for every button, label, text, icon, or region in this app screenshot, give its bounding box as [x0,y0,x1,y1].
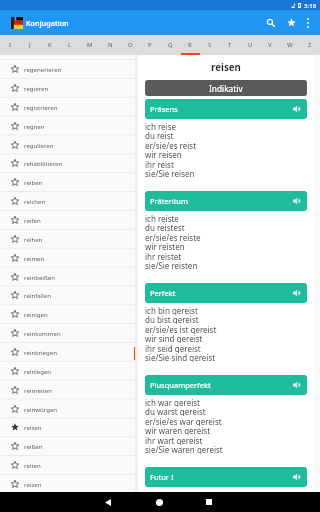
staticText: du reistest [145,222,185,232]
staticText: registrieren [24,103,58,111]
button[interactable]: Präsens [145,99,307,119]
staticText: reinbeißen [24,273,55,281]
staticText: reichen [24,197,46,205]
button[interactable]: reimen [0,248,135,267]
button[interactable]: R [180,35,200,55]
staticText: sie/Sie waren gereist [145,444,223,454]
button[interactable]: reinkommen [0,323,135,342]
staticText: Q [168,41,173,49]
staticText: sie/Sie reisten [145,260,198,270]
staticText: S [208,41,212,49]
button[interactable]: I [0,35,20,55]
button[interactable]: reichen [0,191,135,210]
button[interactable]: reinreiten [0,380,135,399]
staticText: L [68,41,72,49]
staticText: 3:16 [304,1,317,9]
staticText: R [188,41,192,49]
staticText: reisen [145,61,307,74]
staticText: O [128,41,133,49]
staticText: reinkommen [24,329,61,337]
staticText: Präsens [150,104,178,114]
staticText: er/sie/es war gereist [145,416,222,426]
staticText: wir waren gereist [145,425,211,435]
staticText: J [29,41,31,49]
staticText: V [268,41,272,49]
button[interactable]: reißen [0,436,135,455]
button[interactable]: reiben [0,172,135,191]
button[interactable]: Home [139,492,179,512]
staticText: reiben [24,178,43,186]
button[interactable]: rehabilitieren [0,153,135,172]
staticText: W [287,41,293,49]
staticText: du warst gereist [145,406,206,416]
button[interactable]: More options [299,10,317,35]
staticText: ihr reist [145,159,174,169]
button[interactable]: N [100,35,120,55]
staticText: reinlegen [24,367,52,375]
staticText: reinwürgen [24,405,58,413]
button[interactable]: Indikativ [145,80,307,96]
button[interactable]: W [280,35,300,55]
button[interactable]: Plusquamperfekt [145,375,307,395]
button[interactable]: U [240,35,260,55]
button[interactable]: reizen [0,474,135,493]
staticText: er/sie/es reist [145,140,197,150]
button[interactable]: S [200,35,220,55]
button[interactable]: reiten [0,455,135,474]
staticText: er/sie/es ist gereist [145,324,217,334]
staticText: regnen [24,122,45,130]
button[interactable]: Z [300,35,320,55]
button[interactable]: reifen [0,210,135,229]
button[interactable]: V [260,35,280,55]
staticText: M [87,41,93,49]
staticText: wir sind gereist [145,333,203,343]
button[interactable]: reinkriegen [0,342,135,361]
staticText: regulieren [24,141,54,149]
button[interactable]: reisen [0,417,135,436]
button[interactable]: reinbeißen [0,267,135,286]
button[interactable]: P [140,35,160,55]
staticText: Konjugation [26,18,69,28]
staticText: reizen [24,480,42,488]
button[interactable]: K [40,35,60,55]
button[interactable]: Search [262,10,280,35]
button[interactable]: registrieren [0,97,135,116]
button[interactable]: O [120,35,140,55]
button[interactable]: M [80,35,100,55]
button[interactable]: T [220,35,240,55]
staticText: K [48,41,52,49]
button[interactable]: reinlegen [0,361,135,380]
staticText: ich reiste [145,213,179,223]
staticText: du reist [145,130,174,140]
button[interactable]: J [20,35,40,55]
button[interactable]: reihen [0,229,135,248]
staticText: wir reisen [145,149,182,159]
staticText: du bist gereist [145,314,199,324]
button[interactable]: Perfekt [145,283,307,303]
button[interactable]: regnen [0,116,135,135]
staticText: I [9,41,12,49]
button[interactable]: reinigen [0,304,135,323]
staticText: ihr reistet [145,251,182,261]
button[interactable]: regulieren [0,135,135,154]
staticText: reimen [24,254,45,262]
staticText: reinigen [24,310,48,318]
button[interactable]: Präteritum [145,191,307,211]
button[interactable]: Favorites [282,10,300,35]
button[interactable]: Back [88,492,128,512]
staticText: Plusquamperfekt [150,380,211,390]
button[interactable]: Futur I [145,467,307,487]
staticText: reinreiten [24,386,52,394]
button[interactable]: regenerieren [0,59,135,78]
button[interactable]: Recent apps [189,492,229,512]
button[interactable]: L [60,35,80,55]
button[interactable]: reinwürgen [0,399,135,418]
button[interactable]: Q [160,35,180,55]
button[interactable]: regieren [0,78,135,97]
staticText: reinkriegen [24,348,57,356]
staticText: reifen [24,216,41,224]
staticText: reiten [24,461,41,469]
staticText: N [108,41,113,49]
staticText: sie/Sie sind gereist [145,352,216,362]
button[interactable]: reinfallen [0,285,135,304]
